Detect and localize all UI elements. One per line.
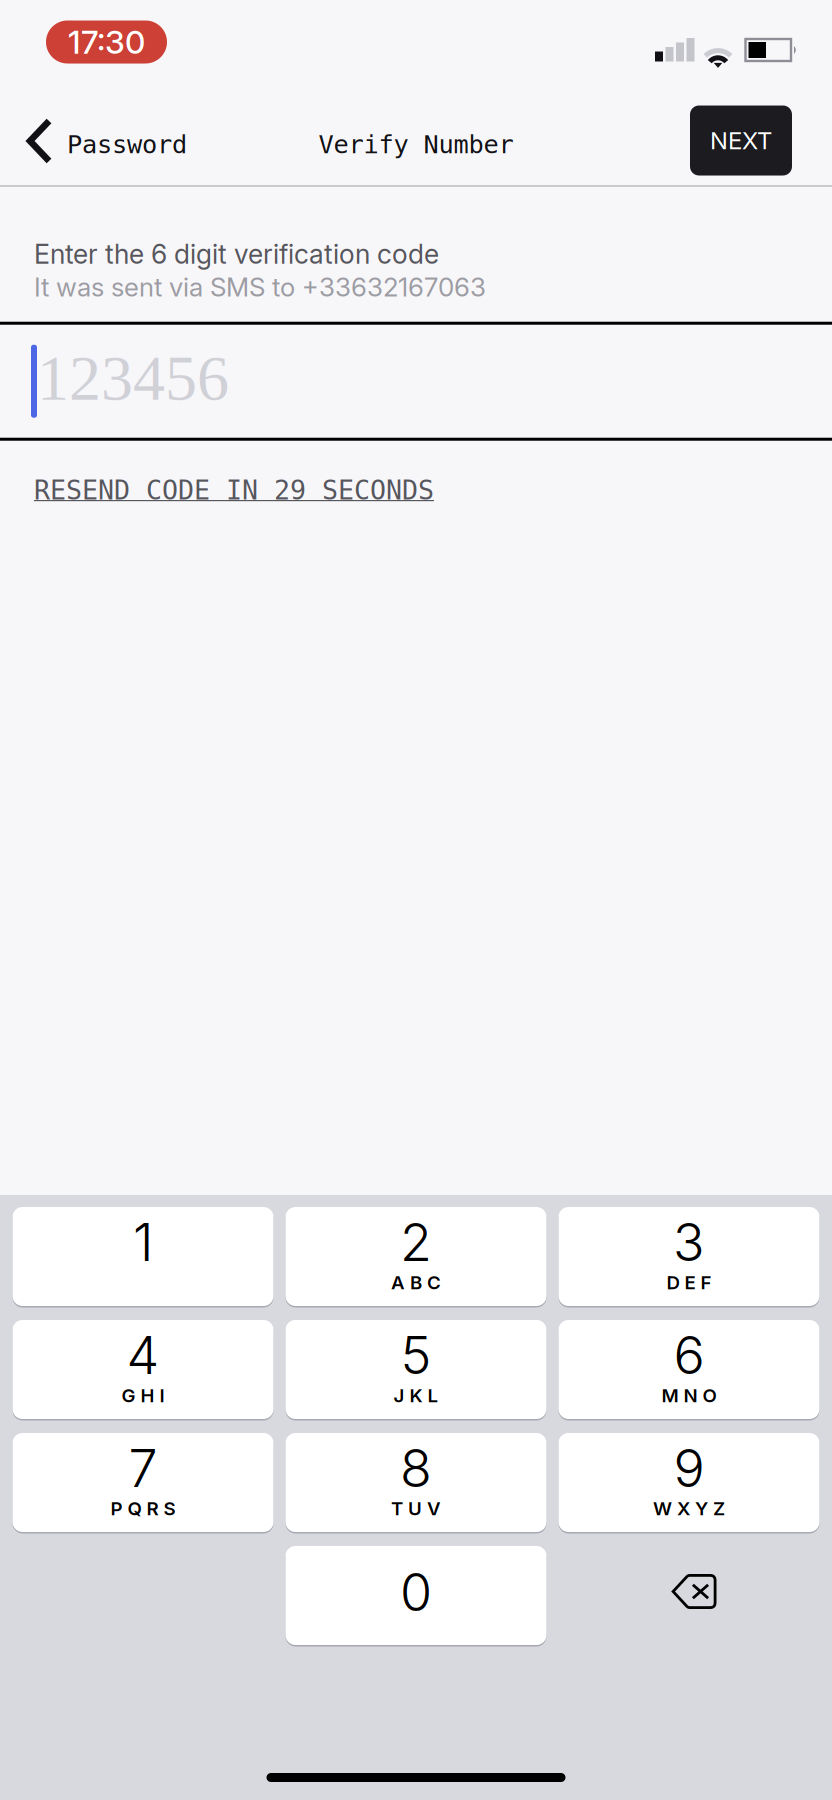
staticText: 4 xyxy=(126,1323,159,1386)
button[interactable]: 7 xyxy=(12,1433,273,1532)
staticText: P Q R S xyxy=(110,1497,175,1520)
staticText: 5 xyxy=(400,1323,431,1386)
staticText: 17:30 xyxy=(68,23,145,61)
button[interactable]: RESEND CODE IN 29 SECONDS xyxy=(0,441,832,520)
staticText: M N O xyxy=(661,1384,716,1407)
button[interactable]: 1 xyxy=(12,1207,273,1306)
staticText: It was sent via SMS to +33632167063 xyxy=(34,271,486,303)
staticText: NEXT xyxy=(710,126,772,155)
button[interactable]: NEXT xyxy=(690,105,792,175)
staticText: G H I xyxy=(121,1384,164,1407)
button[interactable]: Delete xyxy=(558,1546,819,1645)
staticText: T U V xyxy=(391,1497,441,1520)
button[interactable]: 2 xyxy=(285,1207,546,1306)
staticText: W X Y Z xyxy=(653,1497,725,1520)
button[interactable]: Password xyxy=(0,94,205,195)
button[interactable]: 9 xyxy=(558,1433,819,1532)
button[interactable]: 3 xyxy=(558,1207,819,1306)
staticText: A B C xyxy=(391,1271,441,1294)
staticText: RESEND CODE IN 29 SECONDS xyxy=(34,475,434,506)
staticText: 2 xyxy=(400,1210,432,1273)
staticText: 8 xyxy=(400,1436,432,1499)
button[interactable]: 5 xyxy=(285,1320,546,1419)
staticText: Verify Number xyxy=(318,130,513,159)
staticText: 1 xyxy=(133,1210,153,1273)
staticText: Enter the 6 digit verification code xyxy=(34,238,439,270)
button[interactable]: 8 xyxy=(285,1433,546,1532)
staticText: 0 xyxy=(400,1560,432,1623)
staticText: D E F xyxy=(666,1271,711,1294)
staticText: 7 xyxy=(128,1436,157,1499)
button[interactable]: 6 xyxy=(558,1320,819,1419)
staticText: 3 xyxy=(673,1210,705,1273)
button[interactable]: 4 xyxy=(12,1320,273,1419)
button[interactable]: 0 xyxy=(285,1546,546,1645)
staticText: Password xyxy=(67,130,187,159)
staticText: 123456 xyxy=(37,343,229,414)
staticText: 9 xyxy=(673,1436,704,1499)
staticText: J K L xyxy=(393,1384,438,1407)
staticText: 6 xyxy=(673,1323,704,1386)
